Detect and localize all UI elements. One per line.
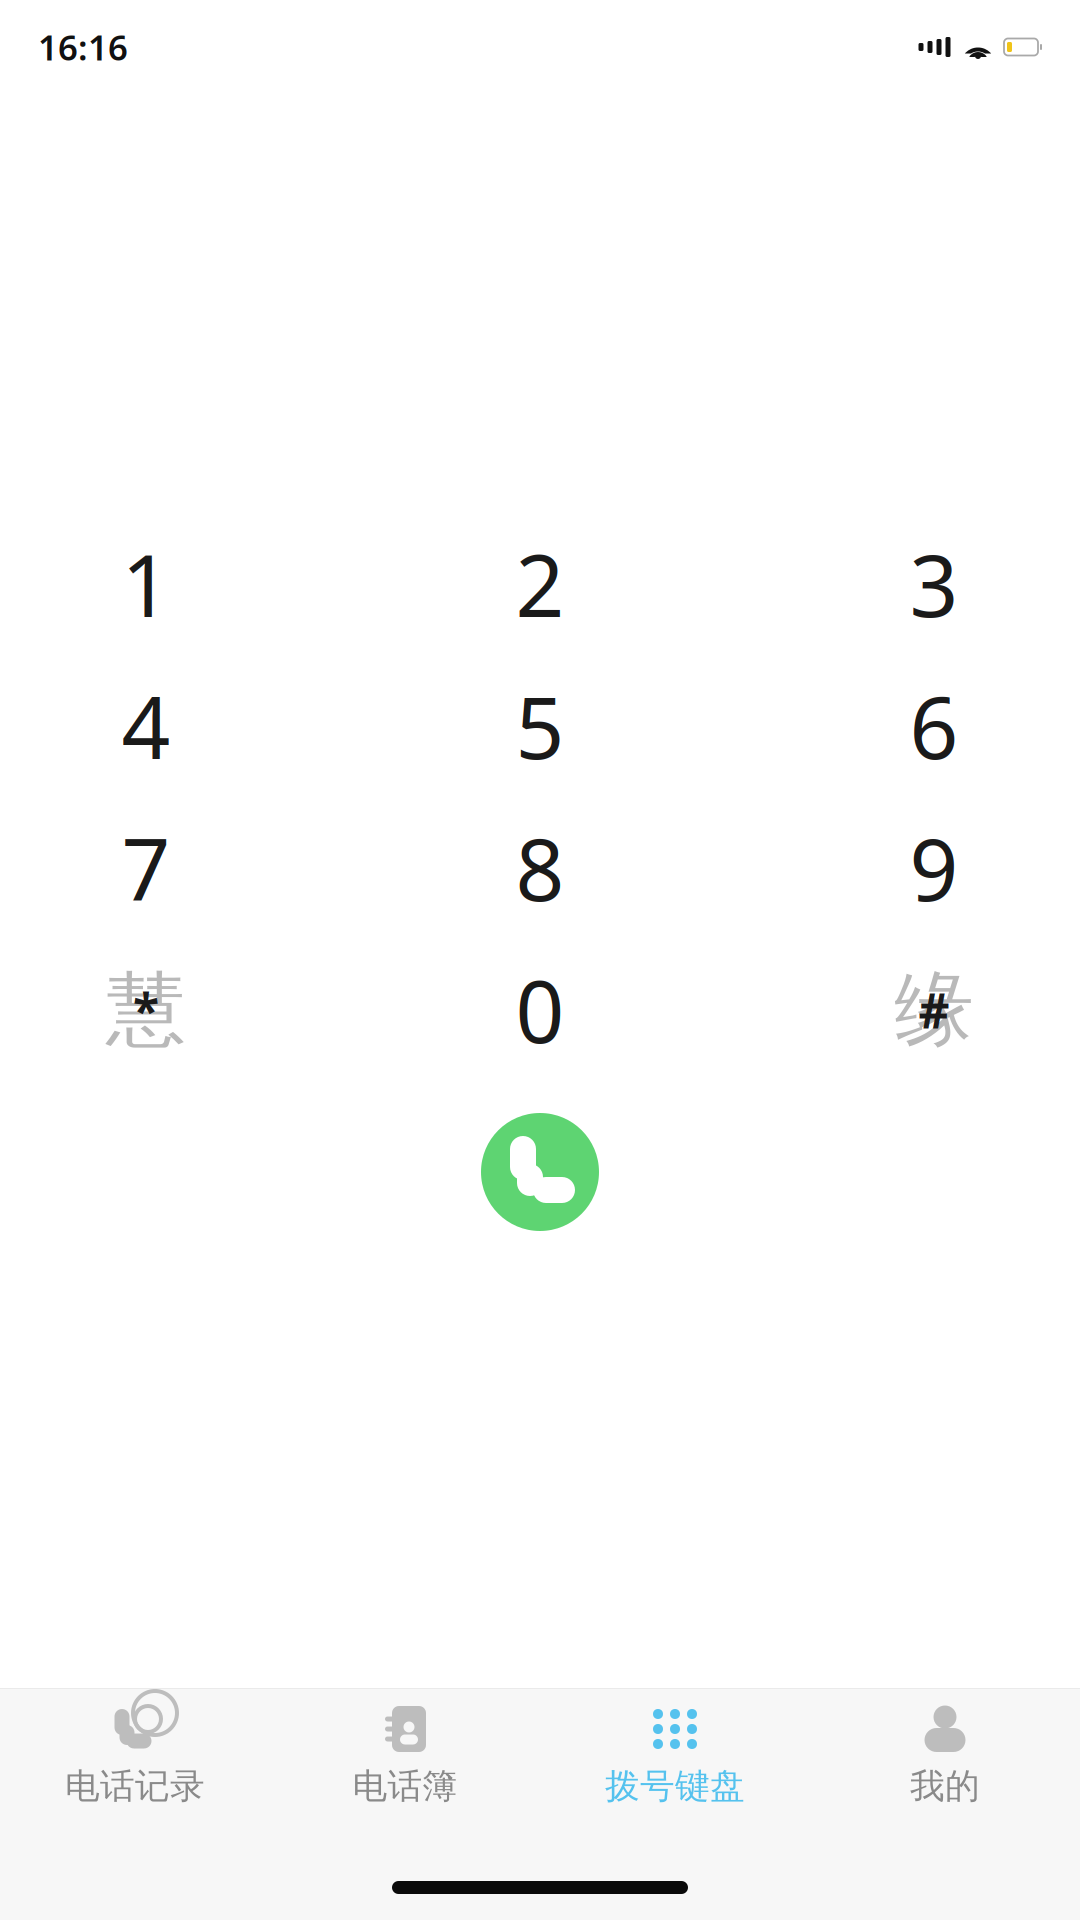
staticText: 我的 xyxy=(910,1765,980,1808)
button[interactable]: 我的 xyxy=(810,1689,1080,1820)
button[interactable]: 0 xyxy=(430,939,650,1081)
button[interactable]: 1 xyxy=(36,513,256,655)
button[interactable]: 拨号键盘 xyxy=(540,1689,810,1820)
button[interactable]: 3 xyxy=(824,513,1044,655)
staticText: 拨号键盘 xyxy=(605,1765,745,1808)
staticText: 8 xyxy=(515,811,564,925)
button[interactable]: 缘 xyxy=(824,939,1044,1081)
staticText: 4 xyxy=(121,669,170,783)
button[interactable]: 8 xyxy=(430,797,650,939)
button[interactable]: 慧 xyxy=(36,939,256,1081)
staticText: 16:16 xyxy=(38,24,128,70)
staticText: 慧 xyxy=(106,961,186,1059)
staticText: 9 xyxy=(909,811,958,925)
staticText: 0 xyxy=(515,953,564,1067)
button[interactable]: 4 xyxy=(36,655,256,797)
staticText: 5 xyxy=(515,669,564,783)
button[interactable]: 电话记录 xyxy=(0,1689,270,1820)
button[interactable]: 拨打电话 xyxy=(420,1097,660,1247)
staticText: * xyxy=(133,978,159,1042)
staticText: 电话簿 xyxy=(352,1765,457,1808)
button[interactable]: 9 xyxy=(824,797,1044,939)
staticText: 7 xyxy=(121,811,170,925)
button[interactable]: 电话簿 xyxy=(270,1689,540,1820)
button[interactable]: 6 xyxy=(824,655,1044,797)
button[interactable]: 5 xyxy=(430,655,650,797)
button[interactable]: 7 xyxy=(36,797,256,939)
staticText: 3 xyxy=(909,527,958,641)
staticText: 电话记录 xyxy=(65,1765,205,1808)
staticText: 6 xyxy=(909,669,958,783)
staticText: 2 xyxy=(515,527,564,641)
staticText: 缘 xyxy=(894,961,974,1059)
button[interactable]: 2 xyxy=(430,513,650,655)
staticText: 1 xyxy=(121,527,170,641)
staticText: # xyxy=(918,978,949,1042)
